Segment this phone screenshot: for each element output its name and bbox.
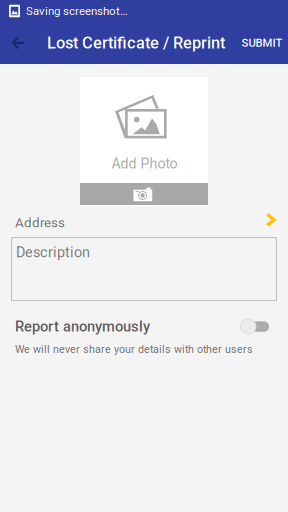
staticText: Address bbox=[15, 215, 65, 231]
staticText: Description bbox=[16, 244, 90, 261]
staticText: We will never share your details with ot… bbox=[15, 343, 253, 355]
staticText: SUBMIT bbox=[241, 36, 282, 50]
button[interactable]: Report anonymously bbox=[15, 315, 265, 337]
button[interactable]: Description bbox=[11, 237, 277, 301]
button[interactable]: Address bbox=[15, 213, 276, 239]
button[interactable]: Add Photo bbox=[80, 77, 208, 206]
staticText: Lost Certificate / Reprint bbox=[47, 33, 225, 53]
staticText: Saving screenshot… bbox=[26, 4, 128, 18]
staticText: Add Photo bbox=[111, 155, 177, 172]
staticText: Report anonymously bbox=[15, 318, 150, 335]
button[interactable]: SUBMIT bbox=[236, 22, 288, 64]
button[interactable]: Back bbox=[0, 22, 36, 64]
